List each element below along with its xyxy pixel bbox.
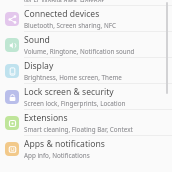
other: Extensions bbox=[5, 116, 19, 130]
button[interactable]: Apps & notifications bbox=[0, 136, 172, 161]
staticText: Wi-Fi, Mobile data, Hotspot bbox=[24, 0, 104, 2]
button[interactable]: Extensions bbox=[0, 110, 172, 135]
staticText: Volume, Ringtone, Notification sound bbox=[24, 47, 135, 56]
staticText: Brightness, Home screen, Theme bbox=[24, 73, 122, 82]
staticText: Connected devices bbox=[24, 8, 100, 20]
other: Display bbox=[5, 64, 19, 78]
other: Connected devices bbox=[5, 12, 19, 26]
staticText: Display bbox=[24, 60, 54, 72]
button[interactable]: Lock screen & security bbox=[0, 84, 172, 109]
staticText: Bluetooth, Screen sharing, NFC bbox=[24, 21, 116, 30]
button[interactable]: Display bbox=[0, 58, 172, 83]
button[interactable]: Connected devices bbox=[0, 6, 172, 31]
staticText: Sound bbox=[24, 34, 50, 46]
staticText: App info, Notifications bbox=[24, 151, 90, 160]
other: Lock screen & security bbox=[5, 90, 19, 104]
other: Sound bbox=[5, 38, 19, 52]
staticText: Extensions bbox=[24, 112, 68, 124]
button[interactable]: Sound bbox=[0, 32, 172, 57]
staticText: Apps & notifications bbox=[24, 138, 105, 150]
other: Apps & notifications bbox=[5, 142, 19, 156]
staticText: Lock screen & security bbox=[24, 86, 114, 98]
staticText: Smart cleaning, Floating Bar, Context Aw… bbox=[24, 125, 164, 134]
staticText: Screen lock, Fingerprints, Location bbox=[24, 99, 126, 108]
